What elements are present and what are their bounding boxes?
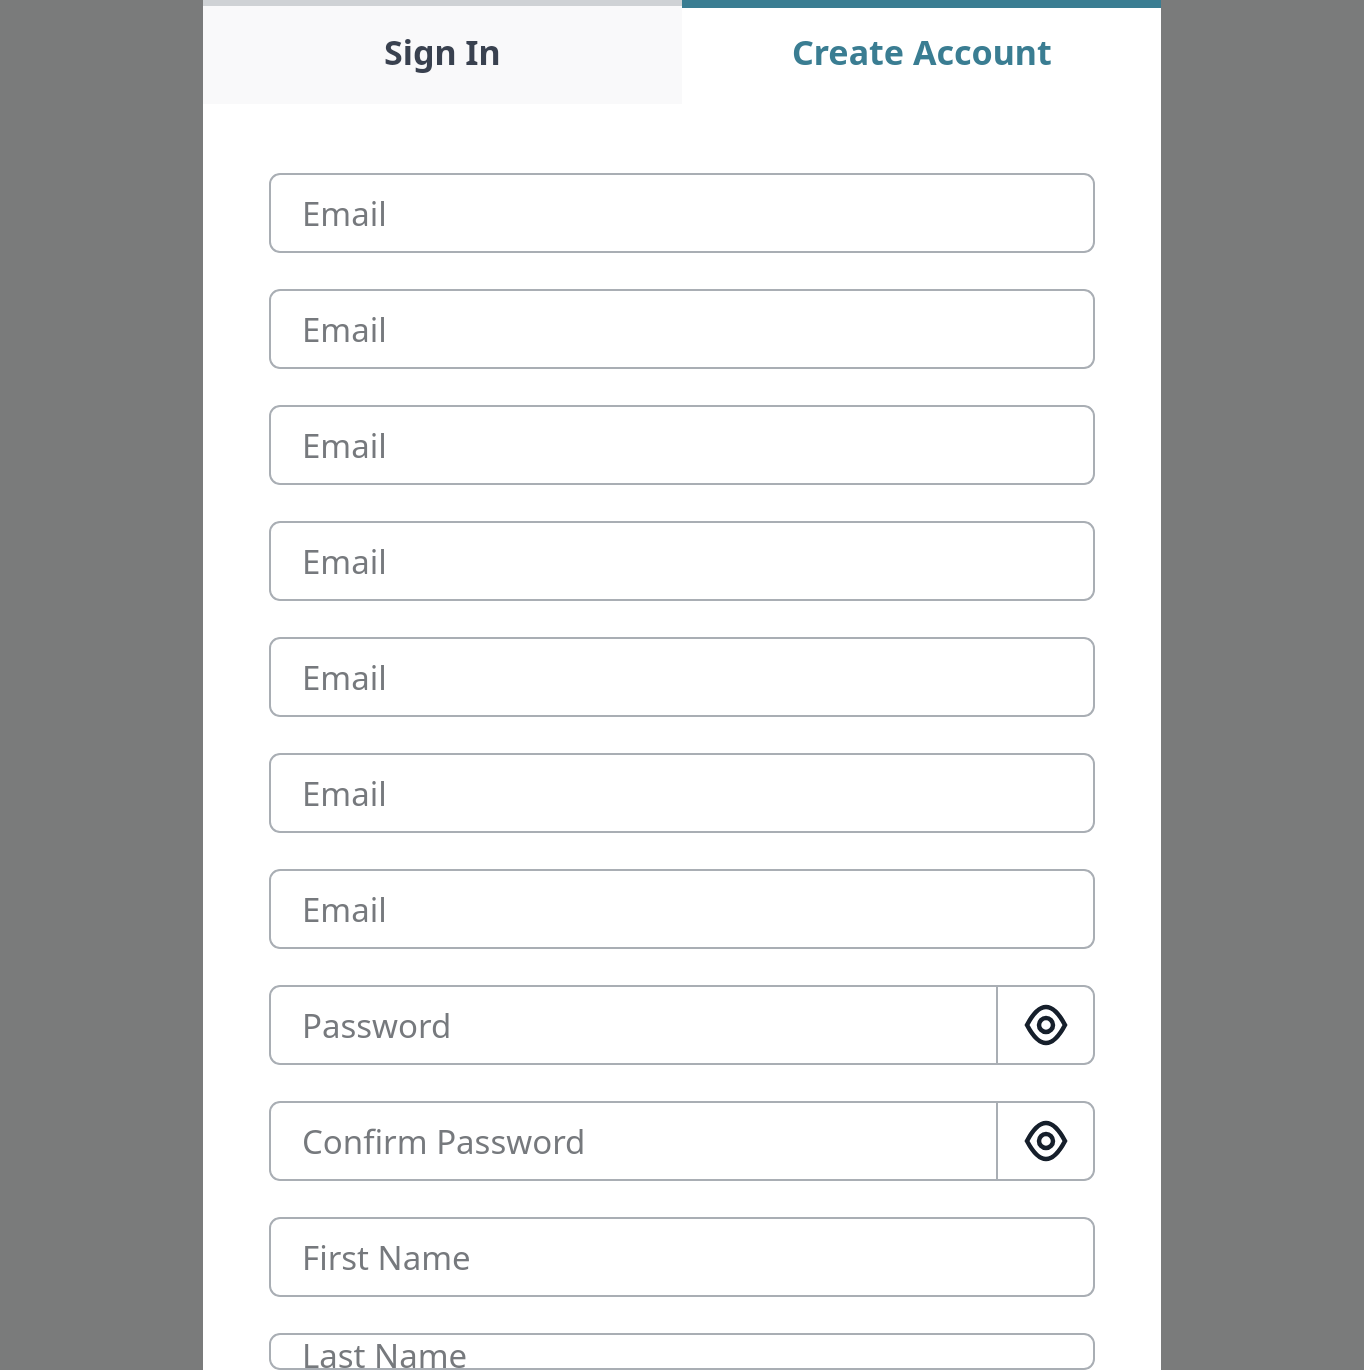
staticText: First Name <box>302 1235 471 1280</box>
staticText: Last Name <box>302 1333 468 1370</box>
staticText: Email <box>302 423 387 468</box>
staticText: Confirm Password <box>302 1119 586 1164</box>
button[interactable]: Create Account <box>682 0 1161 104</box>
staticText: Password <box>302 1003 452 1048</box>
button[interactable]: Email <box>269 869 1095 949</box>
button[interactable]: Show password <box>997 1101 1095 1181</box>
button[interactable]: Sign In <box>203 0 682 104</box>
staticText: Email <box>302 655 387 700</box>
staticText: Create Account <box>792 29 1052 75</box>
button[interactable]: Email <box>269 637 1095 717</box>
button[interactable]: First Name <box>269 1217 1095 1297</box>
button[interactable]: Last Name <box>269 1333 1095 1370</box>
button[interactable]: Email <box>269 173 1095 253</box>
staticText: Sign In <box>384 29 501 75</box>
staticText: Email <box>302 307 387 352</box>
button[interactable]: Email <box>269 521 1095 601</box>
button[interactable]: Show password <box>997 985 1095 1065</box>
staticText: Email <box>302 539 387 584</box>
button[interactable]: Email <box>269 289 1095 369</box>
button[interactable]: Confirm Password <box>269 1101 1095 1181</box>
button[interactable]: Email <box>269 405 1095 485</box>
staticText: Email <box>302 887 387 932</box>
staticText: Email <box>302 191 387 236</box>
button[interactable]: Email <box>269 753 1095 833</box>
staticText: Email <box>302 771 387 816</box>
button[interactable]: Password <box>269 985 1095 1065</box>
